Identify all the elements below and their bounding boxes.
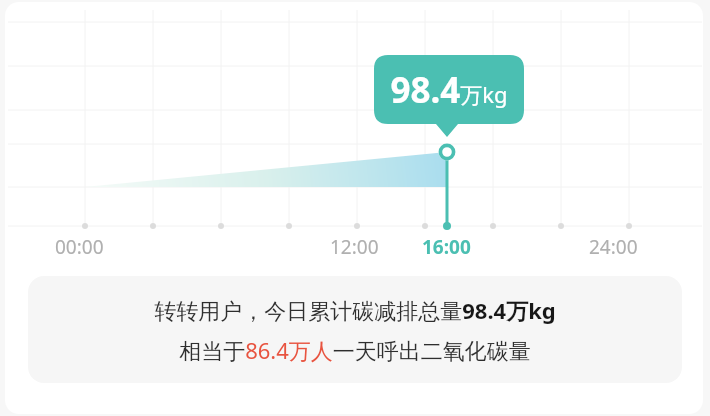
button[interactable]: 12:00 [330,234,390,258]
button[interactable]: 转转用户，今日累计碳减排总量98.4万kg [28,276,682,383]
button[interactable]: 24:00 [589,234,649,258]
staticText: 转转用户，今日累计碳减排总量98.4万kg [154,295,556,325]
button[interactable]: 98.4万kg 碳减排总量 [374,55,524,124]
button[interactable]: 16:00 [422,234,482,258]
staticText: 相当于86.4万人一天呼出二氧化碳量 [179,335,531,365]
staticText: 16:00 [422,234,471,258]
staticText: 00:00 [55,234,104,258]
button[interactable]: 00:00 [55,234,115,258]
staticText: 24:00 [589,234,638,258]
staticText: 98.4万kg [390,66,508,114]
staticText: 12:00 [330,234,379,258]
